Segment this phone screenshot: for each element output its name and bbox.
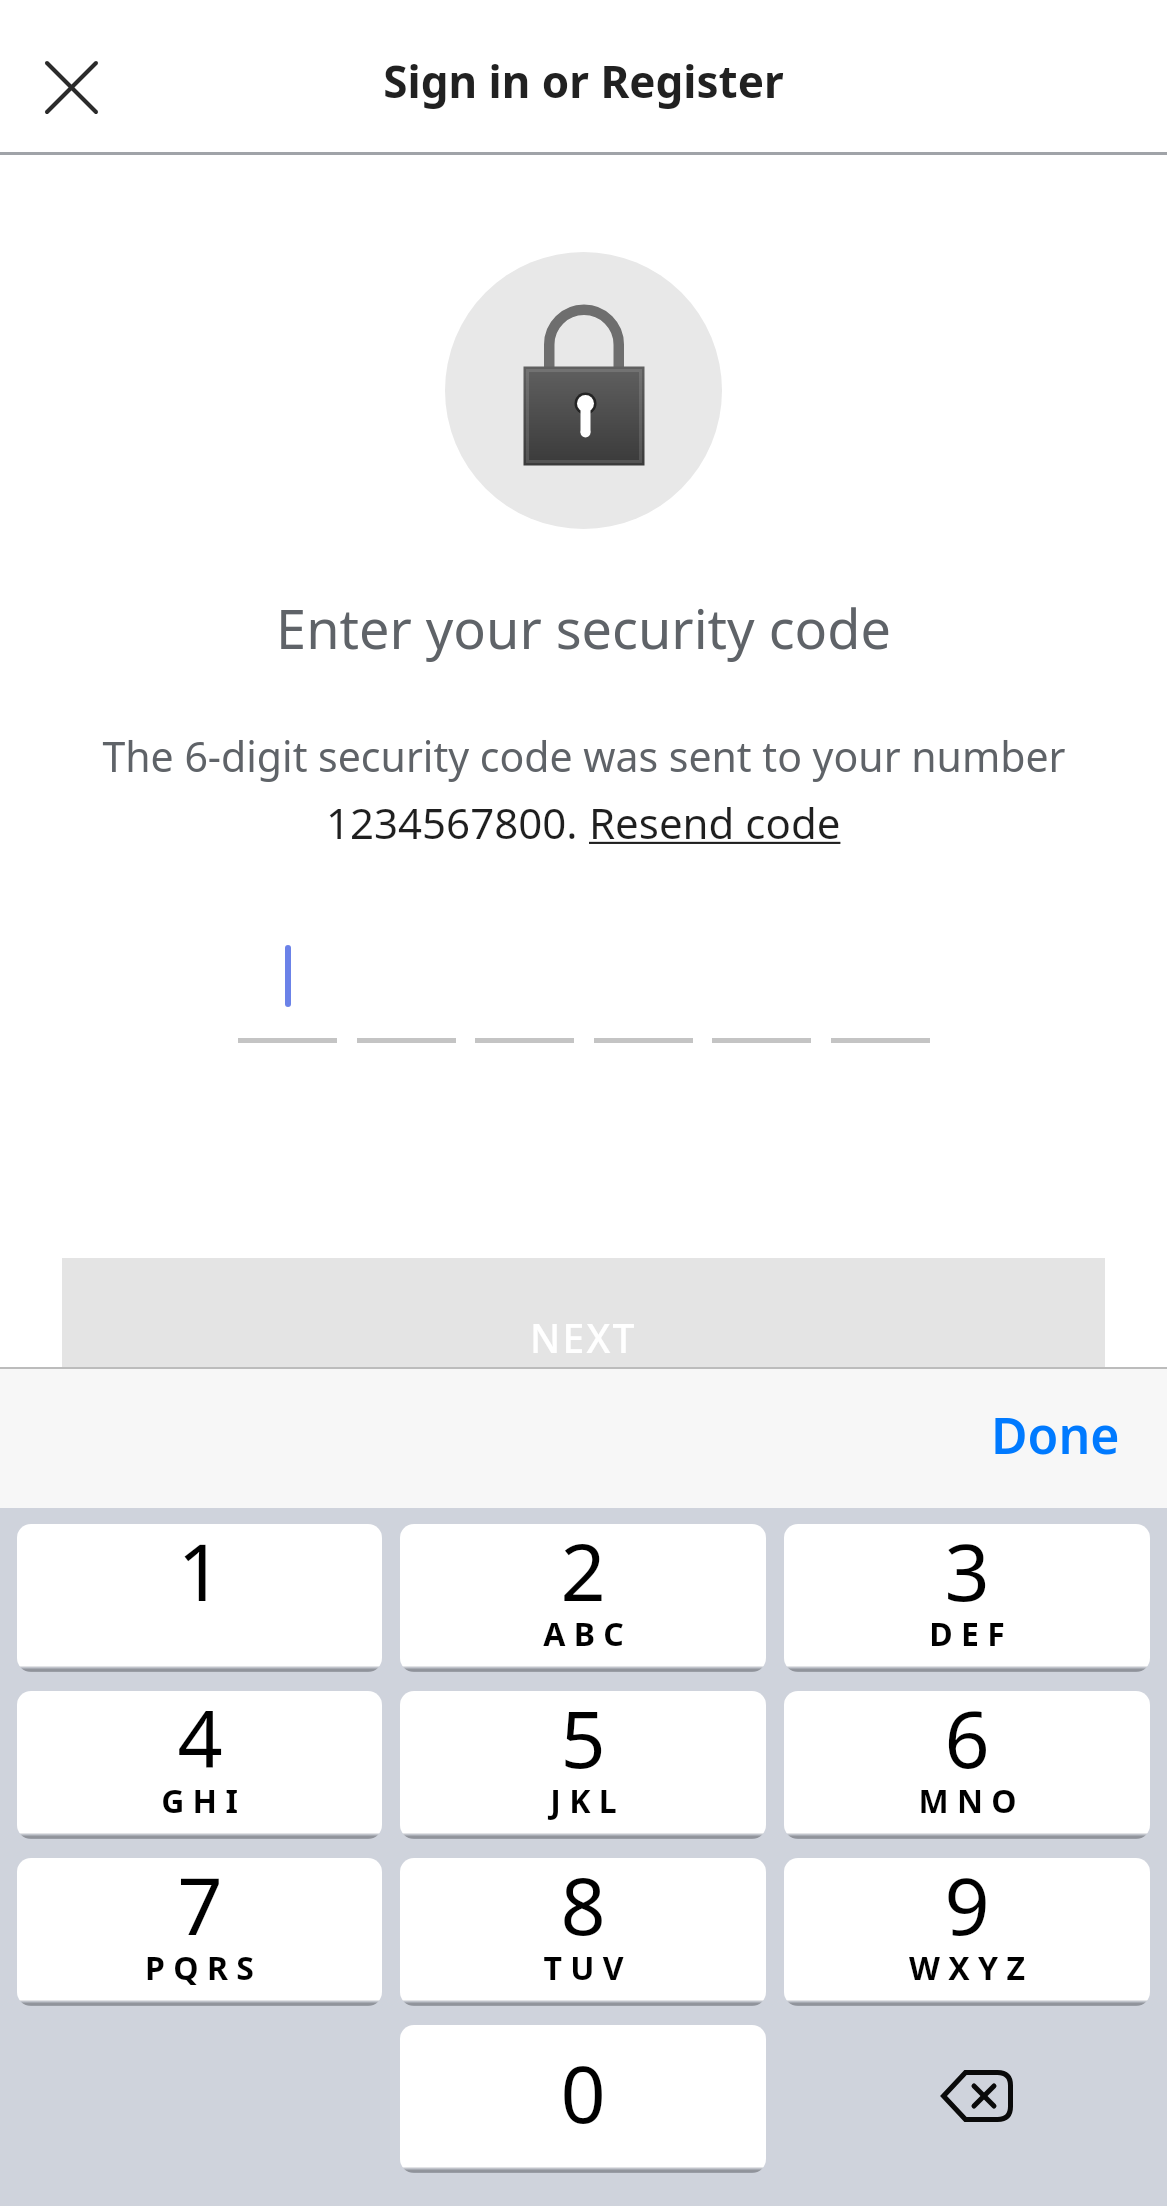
button[interactable]: 5 <box>400 1691 766 1833</box>
staticText: G H I <box>161 1779 238 1823</box>
button[interactable]: 3 <box>784 1524 1150 1666</box>
staticText: The 6-digit security code was sent to yo… <box>102 728 1066 784</box>
staticText: 4 <box>177 1691 223 1792</box>
staticText: M N O <box>918 1779 1017 1823</box>
button[interactable]: 0 <box>400 2025 766 2167</box>
button[interactable]: 1 <box>17 1524 382 1666</box>
staticText: 8 <box>560 1858 606 1959</box>
staticText: J K L <box>550 1779 617 1823</box>
staticText: 2 <box>560 1524 606 1625</box>
button[interactable]: Resend code <box>589 794 841 851</box>
button[interactable]: Done <box>973 1391 1138 1479</box>
button[interactable]: 6 <box>784 1691 1150 1833</box>
button[interactable]: 7 <box>17 1858 382 2000</box>
staticText: 7 <box>177 1858 223 1959</box>
staticText: 3 <box>944 1524 990 1625</box>
button[interactable]: Backspace <box>784 2025 1150 2167</box>
staticText: Sign in or Register <box>383 51 784 111</box>
staticText: 0 <box>560 2039 606 2147</box>
staticText: 6 <box>944 1691 990 1792</box>
staticText: 1 <box>177 1524 223 1625</box>
staticText: P Q R S <box>145 1946 254 1990</box>
button[interactable]: Close <box>21 37 121 137</box>
button[interactable]: 8 <box>400 1858 766 2000</box>
button[interactable]: 4 <box>17 1691 382 1833</box>
staticText: NEXT <box>530 1311 637 1364</box>
button[interactable]: 2 <box>400 1524 766 1666</box>
staticText: Done <box>991 1401 1120 1469</box>
staticText: 1234567800. <box>326 794 589 851</box>
staticText: T U V <box>543 1946 624 1990</box>
staticText: W X Y Z <box>909 1946 1025 1990</box>
staticText: 5 <box>560 1691 606 1792</box>
staticText: 9 <box>944 1858 990 1959</box>
staticText: A B C <box>543 1612 624 1656</box>
button[interactable]: NEXT <box>62 1258 1105 1382</box>
button[interactable]: 9 <box>784 1858 1150 2000</box>
staticText: Enter your security code <box>276 591 891 665</box>
staticText: D E F <box>929 1612 1005 1656</box>
